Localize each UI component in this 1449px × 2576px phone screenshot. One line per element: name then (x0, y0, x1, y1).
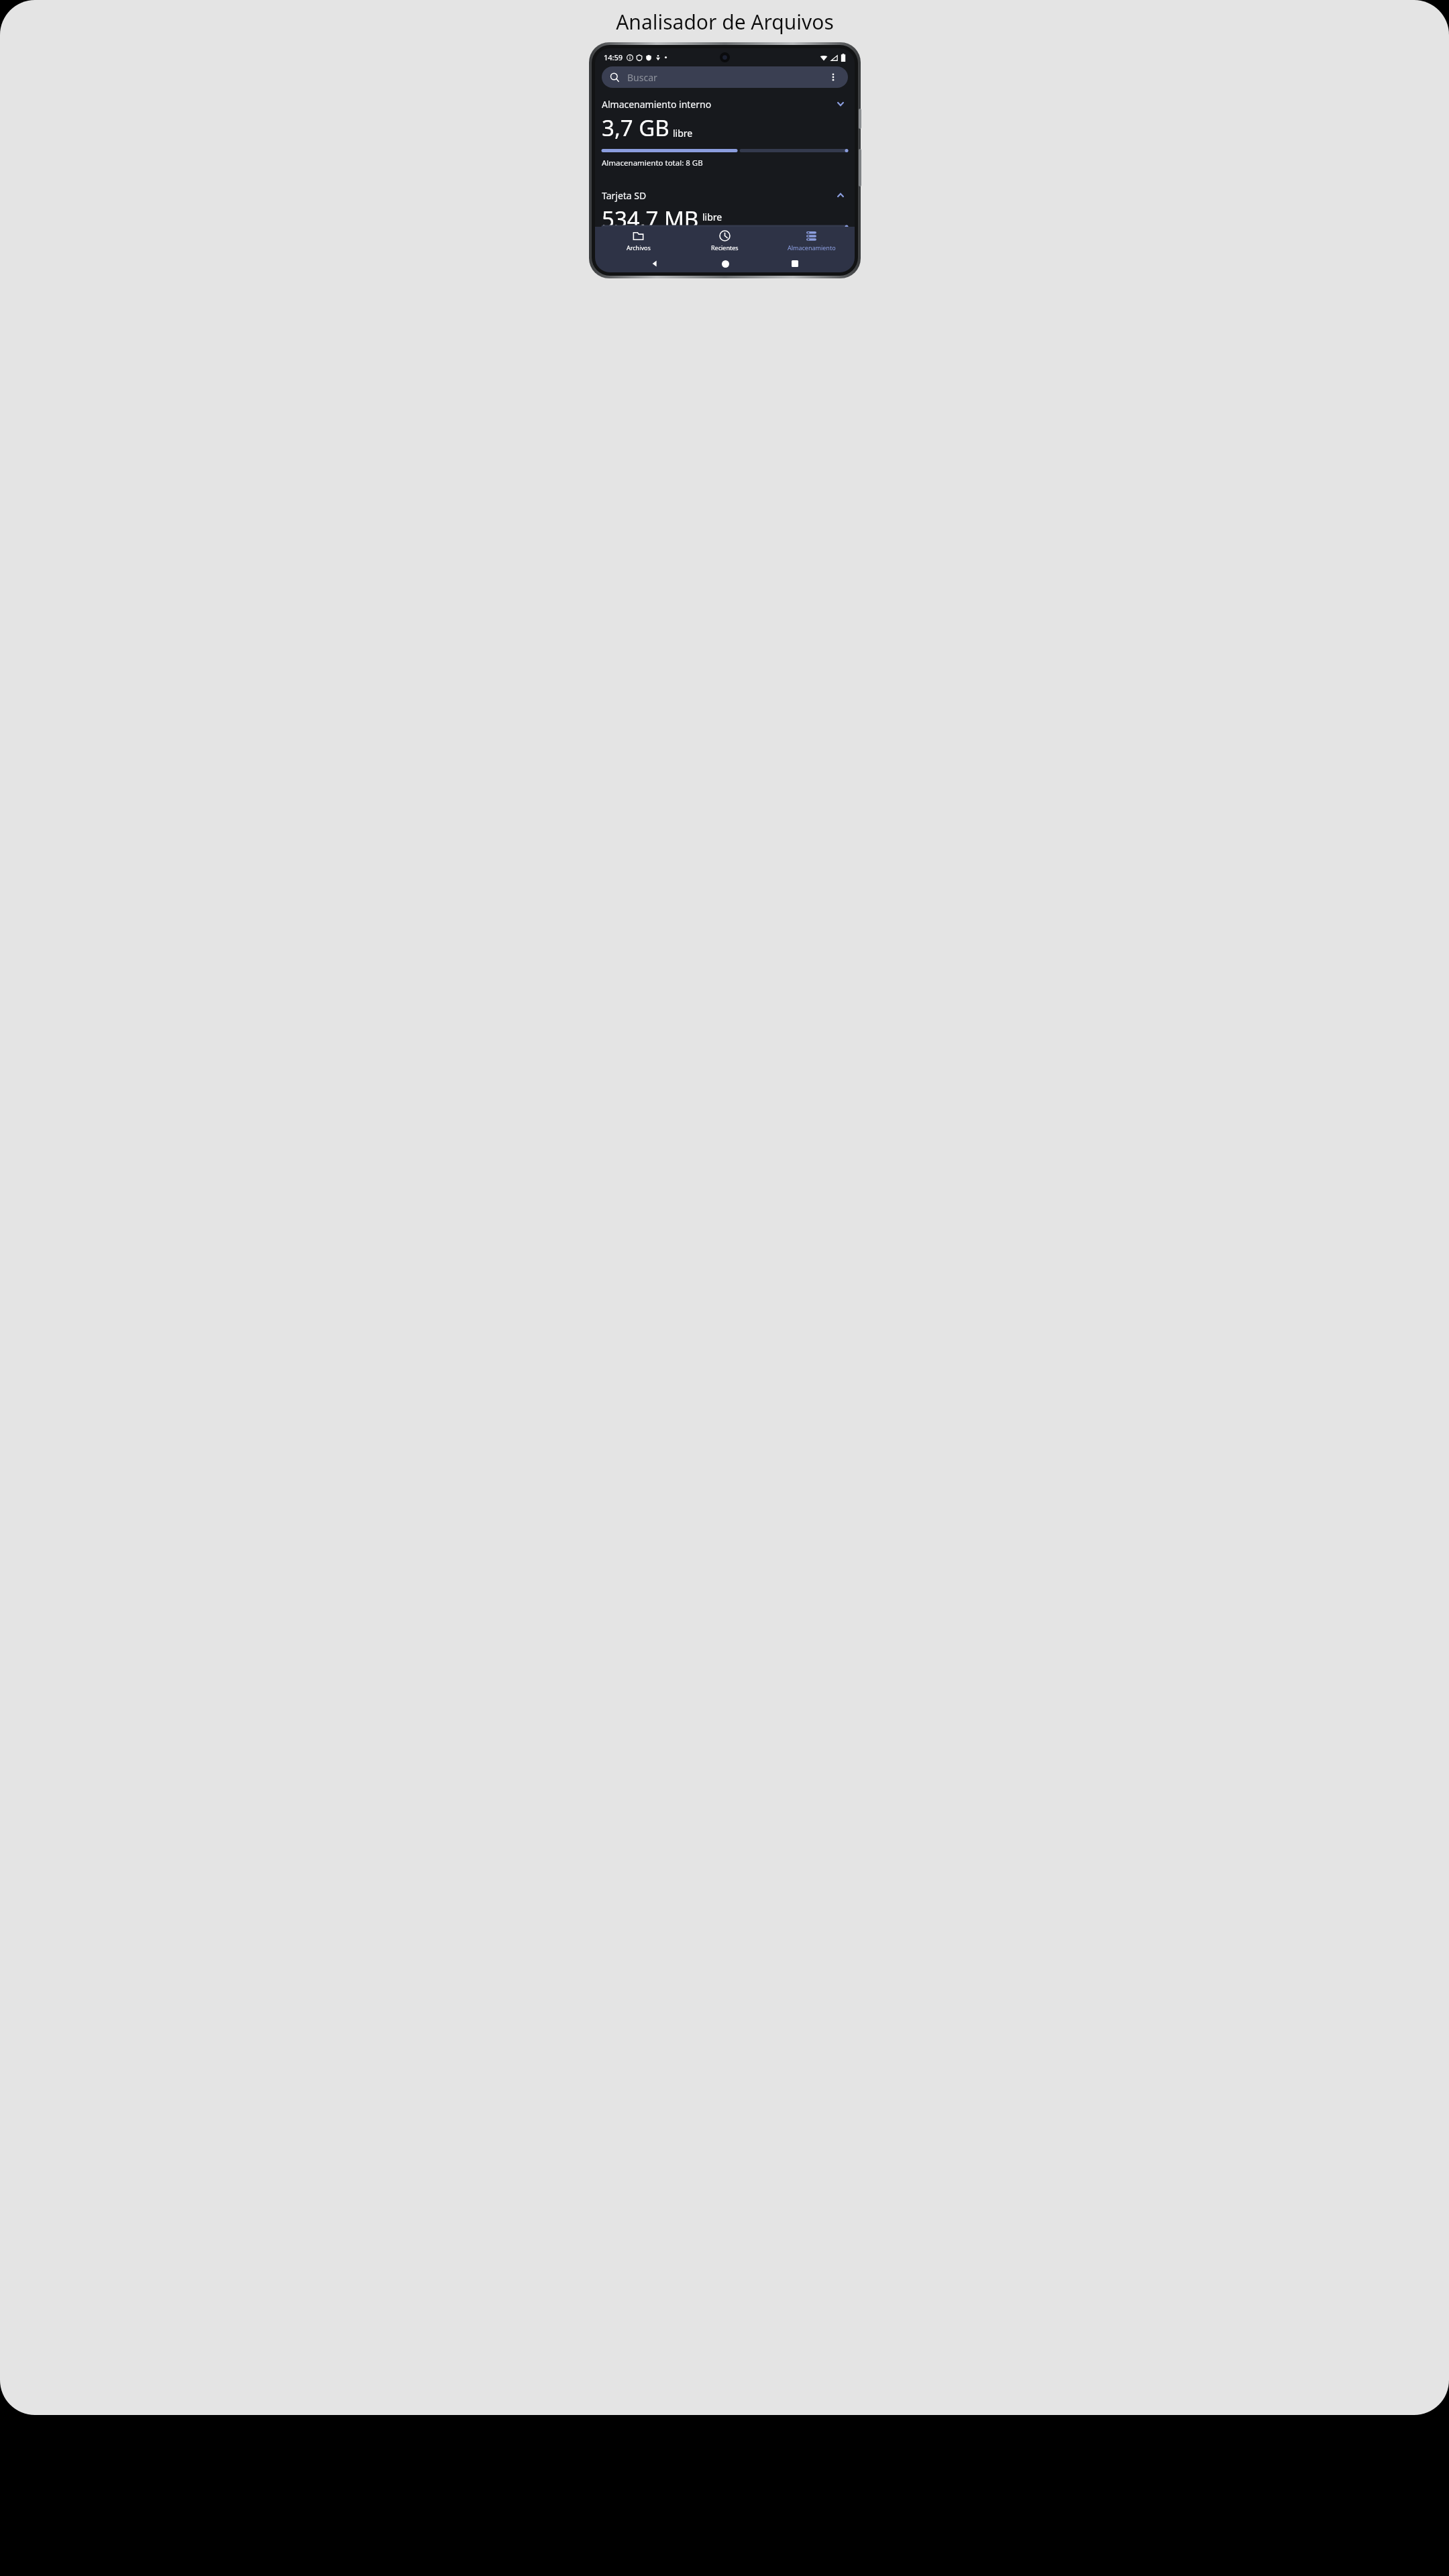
staticText: Recientes (711, 244, 739, 252)
staticText: Buscar (627, 71, 657, 84)
staticText: Almacenamiento interno (602, 98, 712, 111)
button[interactable]: Recientes (682, 227, 768, 255)
staticText: 534,7 MB (602, 204, 699, 227)
other: Expandir (833, 97, 848, 111)
staticText: Archivos (627, 244, 651, 252)
button[interactable]: Atrás (645, 255, 665, 272)
staticText: Almacenamiento total: 8 GB (602, 158, 703, 168)
staticText: libre (702, 211, 722, 223)
other: Contraer (833, 188, 848, 203)
button[interactable]: Tarjeta SD (602, 182, 848, 227)
button[interactable]: Recientes (785, 255, 805, 272)
button[interactable]: Almacenamiento (768, 227, 855, 255)
button[interactable]: Almacenamiento interno (602, 91, 848, 143)
button[interactable]: Buscar (602, 66, 848, 88)
staticText: 14:59 (604, 52, 623, 62)
staticText: Tarjeta SD (602, 189, 647, 202)
staticText: 3,7 GB (602, 113, 669, 143)
button[interactable]: Archivos (595, 227, 682, 255)
staticText: Analisador de Arquivos (616, 8, 834, 36)
button[interactable]: Más opciones (826, 70, 840, 84)
staticText: libre (673, 127, 693, 140)
button[interactable]: Inicio (715, 255, 735, 272)
staticText: Almacenamiento (788, 244, 836, 252)
